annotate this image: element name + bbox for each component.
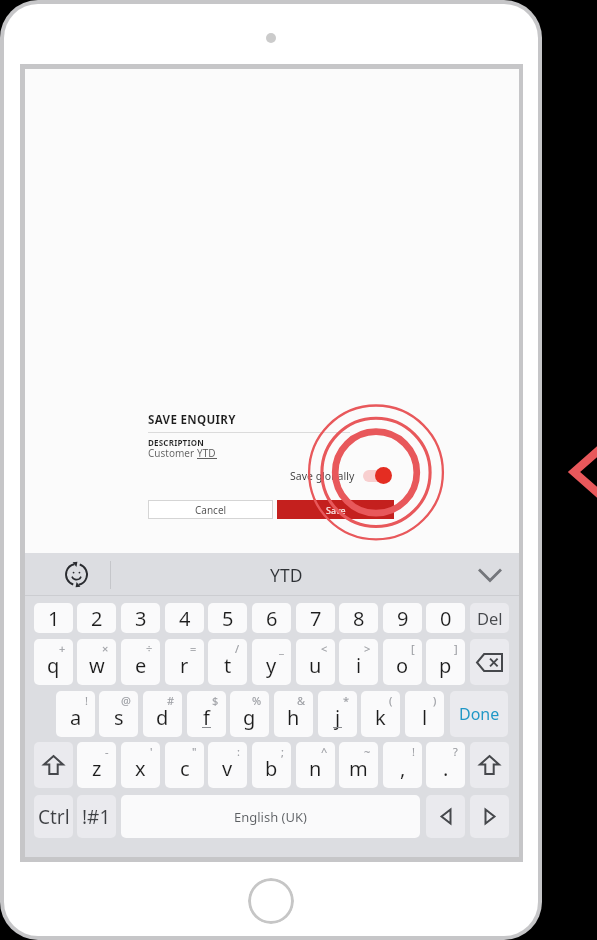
staticText: English (UK) xyxy=(234,808,307,826)
staticText: Ctrl xyxy=(38,804,70,830)
staticText: i xyxy=(356,652,362,679)
staticText: !#1 xyxy=(82,804,111,830)
staticText: s xyxy=(114,704,124,731)
button[interactable]: Home xyxy=(248,878,294,924)
button[interactable]: @ xyxy=(99,691,138,737)
button[interactable]: 0 xyxy=(426,603,465,633)
staticText: m xyxy=(349,755,368,782)
button[interactable]: _ xyxy=(252,639,291,685)
button[interactable]: Cancel xyxy=(148,500,273,519)
staticText: Customer xyxy=(148,446,197,460)
staticText: 6 xyxy=(266,605,278,632)
staticText: o xyxy=(396,652,409,679)
staticText: h xyxy=(287,704,300,731)
button[interactable]: ] xyxy=(426,639,465,685)
staticText: 1 xyxy=(48,605,60,632)
staticText: @ xyxy=(121,693,131,708)
staticText: 9 xyxy=(397,605,409,632)
button[interactable]: 9 xyxy=(383,603,422,633)
button[interactable]: ! xyxy=(56,691,95,737)
staticText: b xyxy=(265,755,278,782)
button[interactable]: Back xyxy=(564,440,597,504)
button[interactable]: 4 xyxy=(165,603,204,633)
button[interactable]: / xyxy=(208,639,247,685)
staticText: & xyxy=(297,693,306,708)
button[interactable]: Move right xyxy=(470,795,509,838)
button[interactable]: * xyxy=(318,691,357,737)
staticText: ~ xyxy=(364,744,371,759)
button[interactable]: " xyxy=(165,742,204,788)
button[interactable]: Emoji xyxy=(25,553,111,596)
button[interactable]: < xyxy=(296,639,335,685)
button[interactable]: = xyxy=(165,639,204,685)
button[interactable]: Del xyxy=(470,603,509,633)
button[interactable]: English (UK) xyxy=(121,795,420,838)
staticText: ÷ xyxy=(146,641,153,656)
button[interactable]: Save globally toggle xyxy=(361,463,395,487)
staticText: 5 xyxy=(222,605,234,632)
staticText: ; xyxy=(281,744,284,759)
button[interactable]: + xyxy=(34,639,73,685)
staticText: DESCRIPTION xyxy=(148,437,204,448)
button[interactable]: % xyxy=(230,691,269,737)
staticText: . xyxy=(443,755,449,782)
button[interactable]: !#1 xyxy=(77,795,116,838)
button[interactable]: YTD xyxy=(112,553,461,596)
button[interactable]: ) xyxy=(405,691,444,737)
staticText: + xyxy=(59,641,66,656)
staticText: ) xyxy=(433,693,437,708)
button[interactable]: ! xyxy=(383,742,422,788)
button[interactable]: $ xyxy=(187,691,226,737)
staticText: k xyxy=(375,704,386,731)
staticText: * xyxy=(343,693,350,708)
staticText: ! xyxy=(85,693,88,708)
button[interactable]: > xyxy=(339,639,378,685)
button[interactable]: Hide keyboard xyxy=(461,553,519,596)
staticText: a xyxy=(70,704,82,731)
staticText: x xyxy=(135,755,146,782)
button[interactable]: × xyxy=(77,639,116,685)
staticText: ^ xyxy=(321,744,328,759)
button[interactable]: 6 xyxy=(252,603,291,633)
staticText: YTD xyxy=(270,563,303,587)
staticText: j xyxy=(335,704,341,731)
button[interactable]: Backspace xyxy=(470,639,509,685)
button[interactable]: - xyxy=(77,742,116,788)
button[interactable]: & xyxy=(274,691,313,737)
button[interactable]: ~ xyxy=(339,742,378,788)
button[interactable]: ' xyxy=(121,742,160,788)
staticText: × xyxy=(102,641,109,656)
staticText: = xyxy=(190,641,197,656)
button[interactable]: Shift xyxy=(34,742,73,788)
button[interactable]: ^ xyxy=(296,742,335,788)
button[interactable]: ? xyxy=(426,742,465,788)
button[interactable]: 3 xyxy=(121,603,160,633)
button[interactable]: 1 xyxy=(34,603,73,633)
staticText: 3 xyxy=(135,605,147,632)
button[interactable]: Shift right xyxy=(470,742,509,788)
button[interactable]: ÷ xyxy=(121,639,160,685)
staticText: > xyxy=(364,641,371,656)
button[interactable]: # xyxy=(143,691,182,737)
button[interactable]: Done xyxy=(450,691,508,737)
button[interactable]: [ xyxy=(383,639,422,685)
button[interactable]: 2 xyxy=(77,603,116,633)
button[interactable]: 8 xyxy=(339,603,378,633)
staticText: " xyxy=(192,744,197,759)
staticText: t xyxy=(224,652,232,679)
staticText: _ xyxy=(279,641,284,656)
button[interactable]: ; xyxy=(252,742,291,788)
staticText: q xyxy=(47,652,60,679)
button[interactable]: Save xyxy=(277,500,394,519)
staticText: Del xyxy=(477,607,503,629)
button[interactable]: 7 xyxy=(296,603,335,633)
button[interactable]: Ctrl xyxy=(34,795,73,838)
staticText: e xyxy=(135,652,147,679)
button[interactable]: Move left xyxy=(426,795,465,838)
button[interactable]: : xyxy=(208,742,247,788)
staticText: g xyxy=(243,704,256,731)
button[interactable]: 5 xyxy=(208,603,247,633)
button[interactable]: ( xyxy=(361,691,400,737)
staticText: ' xyxy=(150,744,153,759)
button[interactable]: Save globally xyxy=(290,468,355,484)
